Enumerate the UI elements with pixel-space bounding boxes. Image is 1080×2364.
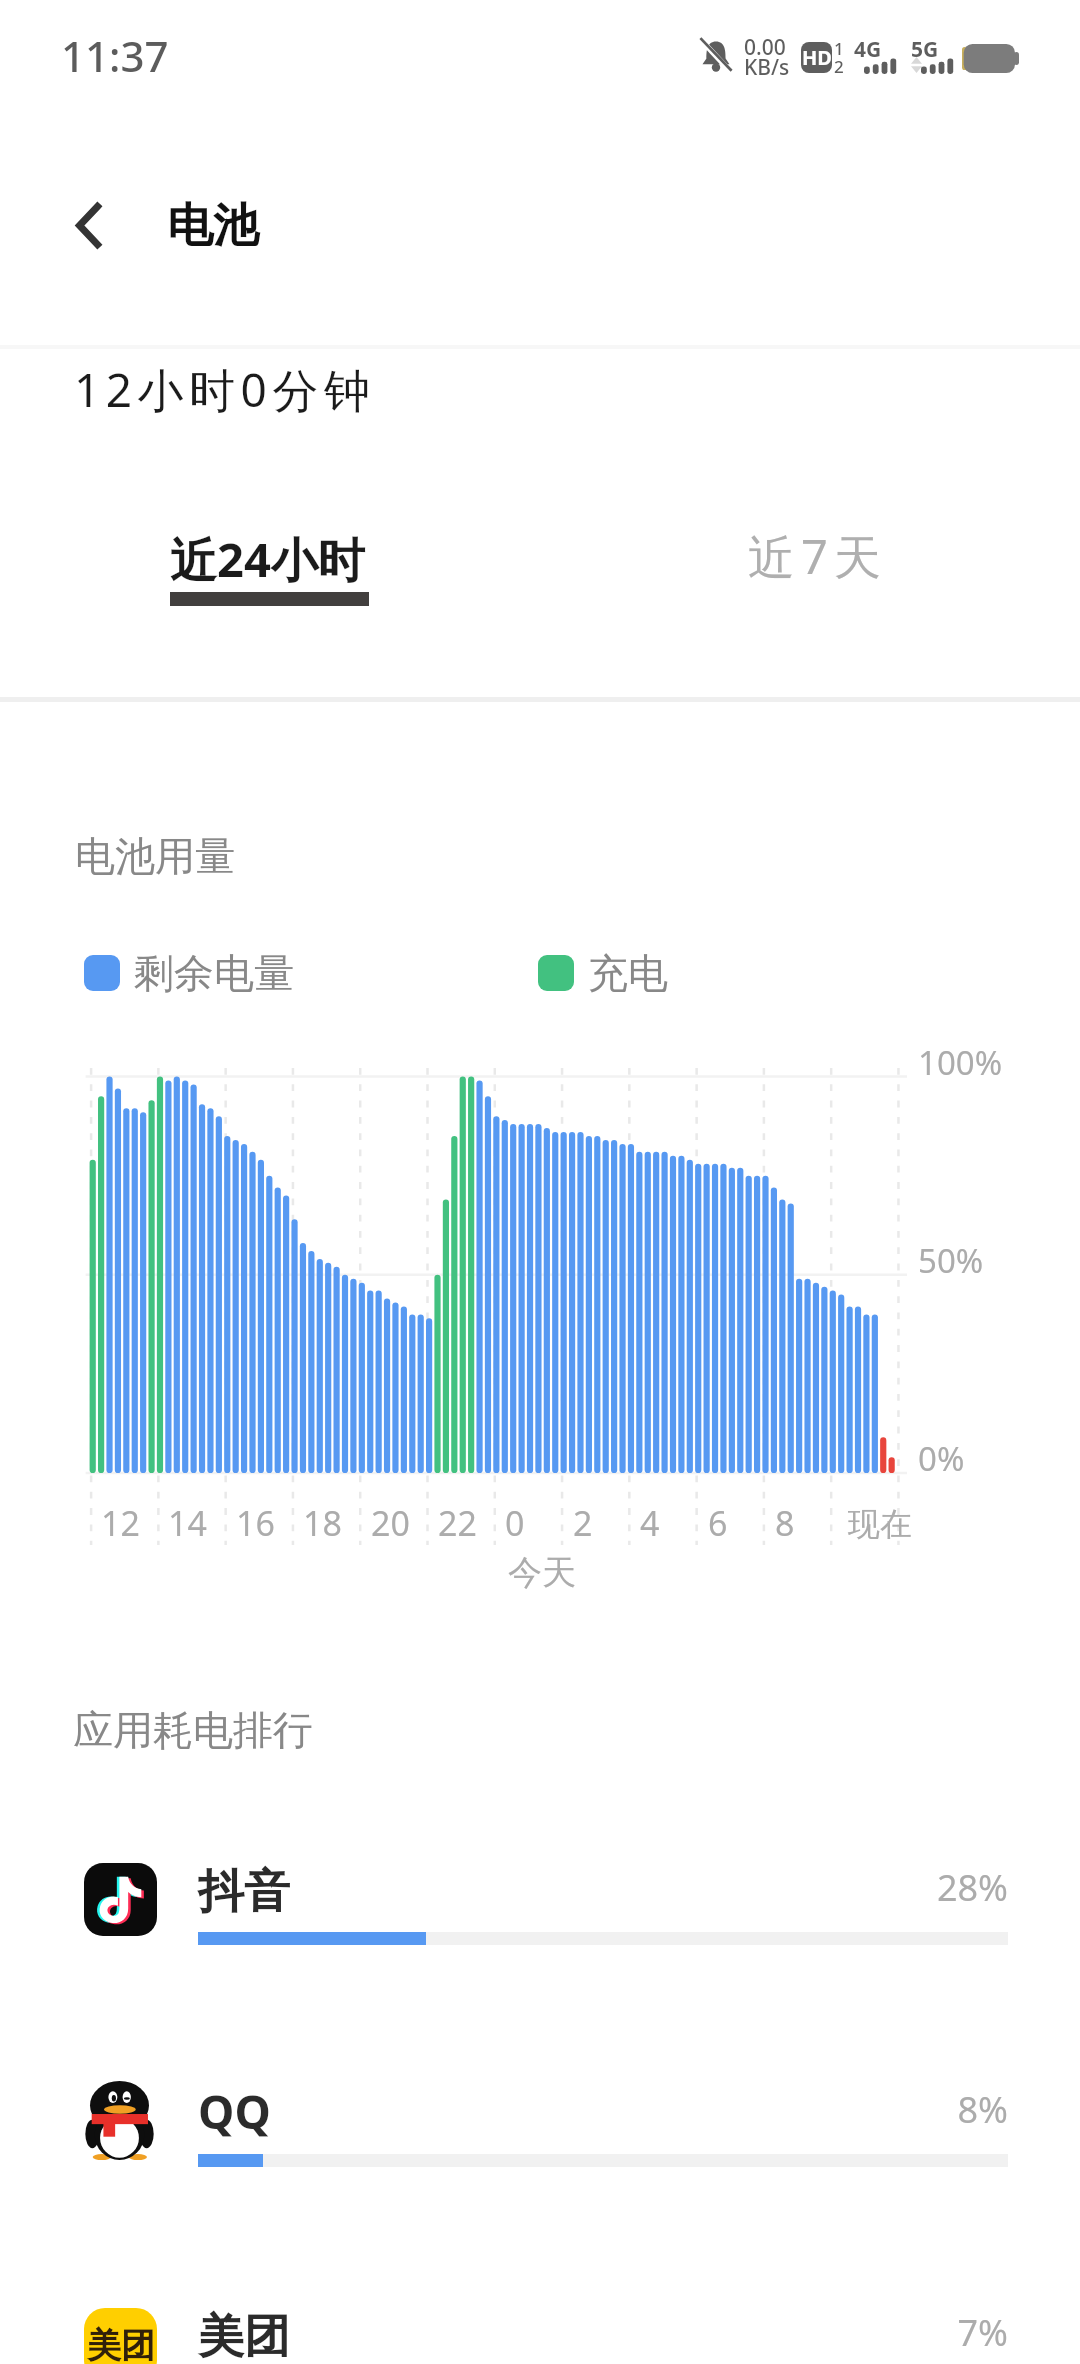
button[interactable]: Back (28, 165, 148, 285)
button[interactable]: 抖音 (0, 1843, 1080, 1993)
staticText: 0.00 (744, 33, 786, 62)
staticText: 100% (918, 1040, 1003, 1085)
button[interactable]: 美团 (0, 2288, 1080, 2364)
staticText: HD (802, 44, 832, 71)
staticText: 8 (775, 1500, 795, 1546)
staticText: 8% (0, 2085, 1008, 2134)
staticText: 1 (834, 37, 844, 60)
staticText: 18 (303, 1500, 342, 1546)
staticText: 2 (834, 55, 844, 78)
staticText: 现在 (848, 1504, 912, 1544)
staticText: 电池用量 (75, 831, 235, 881)
staticText: 11:37 (61, 27, 169, 84)
staticText: KB/s (744, 53, 790, 82)
staticText: 0% (918, 1436, 965, 1481)
staticText: 抖音 (198, 1863, 290, 1921)
staticText: 5G (911, 35, 939, 64)
staticText: 28% (0, 1863, 1008, 1912)
staticText: 12 (101, 1500, 140, 1546)
staticText: 美团 (198, 2308, 290, 2364)
staticText: 22 (438, 1500, 477, 1546)
staticText: 电池 (167, 197, 259, 255)
button[interactable]: 近24小时 (130, 508, 410, 628)
button[interactable]: 近7天 (710, 508, 920, 608)
staticText: 0 (505, 1500, 525, 1546)
staticText: 2 (573, 1500, 593, 1546)
staticText: 应用耗电排行 (73, 1705, 313, 1755)
staticText: QQ (198, 2080, 271, 2143)
staticText: 16 (236, 1500, 275, 1546)
staticText: 近24小时 (170, 527, 365, 591)
staticText: 6 (708, 1500, 728, 1546)
staticText: 剩余电量 (134, 948, 294, 998)
staticText: 50% (918, 1238, 984, 1283)
staticText: 20 (371, 1500, 410, 1546)
staticText: 4G (854, 35, 882, 64)
button[interactable]: QQ (0, 2065, 1080, 2215)
staticText: 14 (168, 1500, 207, 1546)
staticText: 今天 (508, 1551, 576, 1594)
staticText: 近7天 (748, 524, 887, 588)
staticText: 美团 (87, 2324, 155, 2364)
staticText: 4 (640, 1500, 660, 1546)
staticText: 12小时0分钟 (74, 358, 376, 421)
staticText: 充电 (588, 948, 668, 998)
staticText: 7% (0, 2308, 1008, 2357)
